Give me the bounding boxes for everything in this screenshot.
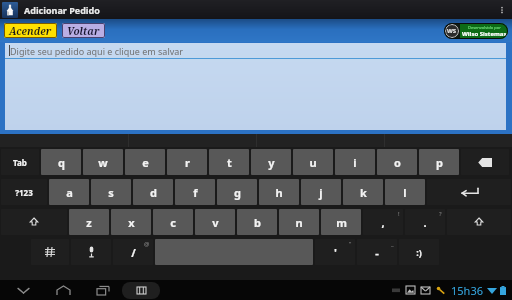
button[interactable]: App icon	[0, 0, 512, 19]
staticText: m	[336, 215, 347, 230]
button[interactable]: WS	[444, 23, 508, 39]
button[interactable]: t	[209, 149, 249, 175]
staticText: "	[349, 240, 352, 248]
staticText: Acender	[9, 24, 52, 38]
staticText: ,	[381, 215, 385, 230]
button[interactable]: k	[343, 179, 383, 205]
staticText: b	[254, 215, 261, 230]
button[interactable]: x	[111, 209, 151, 235]
staticText: j	[319, 185, 323, 200]
staticText: !	[398, 210, 400, 218]
staticText: l	[403, 185, 407, 200]
staticText: r	[185, 155, 190, 170]
button[interactable]: v	[195, 209, 235, 235]
button[interactable]: u	[293, 149, 333, 175]
button[interactable]: l	[385, 179, 425, 205]
staticText: Desenvolvido por	[468, 25, 501, 30]
button[interactable]: ?123	[1, 179, 47, 205]
button[interactable]: Switch keyboard	[122, 282, 160, 299]
button[interactable]: .	[405, 209, 445, 235]
button[interactable]: Voice input	[71, 239, 111, 265]
staticText: n	[295, 215, 303, 230]
staticText: p	[436, 155, 443, 170]
staticText: g	[234, 185, 241, 200]
staticText: a	[66, 185, 73, 200]
button[interactable]: Acender	[9, 23, 52, 38]
button[interactable]: h	[259, 179, 299, 205]
button[interactable]: s	[91, 179, 131, 205]
button[interactable]: Voltar	[67, 23, 100, 38]
staticText: Digite seu pedido aqui e clique em salva…	[10, 45, 184, 57]
button[interactable]: Tab	[1, 149, 39, 175]
staticText: q	[58, 155, 65, 170]
staticText: -	[375, 245, 379, 260]
button[interactable]: p	[419, 149, 459, 175]
button[interactable]: n	[279, 209, 319, 235]
button[interactable]: Shift	[1, 209, 67, 235]
button[interactable]: -	[357, 239, 397, 265]
button[interactable]: i	[335, 149, 375, 175]
button[interactable]: More options	[492, 0, 512, 19]
staticText: :)	[416, 246, 422, 258]
button[interactable]: d	[133, 179, 173, 205]
button[interactable]: z	[69, 209, 109, 235]
staticText: x	[128, 215, 135, 230]
button[interactable]: c	[153, 209, 193, 235]
staticText: Tab	[13, 157, 27, 168]
staticText: o	[394, 155, 401, 170]
button[interactable]: e	[125, 149, 165, 175]
button[interactable]: f	[175, 179, 215, 205]
staticText: f	[193, 185, 198, 200]
button[interactable]: Digite seu pedido aqui e clique em salva…	[5, 43, 506, 130]
staticText: y	[268, 155, 275, 170]
button[interactable]: ,	[363, 209, 403, 235]
button[interactable]: Keyboard settings	[31, 239, 69, 265]
button[interactable]: a	[49, 179, 89, 205]
staticText: '	[334, 245, 337, 260]
staticText: z	[86, 215, 92, 230]
staticText: Wilso Sistemas	[462, 30, 507, 38]
button[interactable]: Enter	[427, 179, 511, 205]
button[interactable]: :)	[399, 239, 439, 265]
staticText: /	[131, 245, 136, 260]
staticText: d	[150, 185, 157, 200]
button[interactable]: Home	[50, 280, 76, 300]
button[interactable]: y	[251, 149, 291, 175]
button[interactable]: /	[113, 239, 153, 265]
staticText: 15h36	[451, 283, 483, 298]
button[interactable]: Hide keyboard	[10, 280, 36, 300]
staticText: Adicionar Pedido	[24, 4, 100, 16]
button[interactable]: q	[41, 149, 81, 175]
button[interactable]: r	[167, 149, 207, 175]
staticText: Voltar	[67, 24, 100, 38]
button[interactable]: '	[315, 239, 355, 265]
button[interactable]: o	[377, 149, 417, 175]
staticText: _	[391, 240, 394, 248]
staticText: ?123	[15, 187, 33, 198]
staticText: u	[309, 155, 317, 170]
button[interactable]: m	[321, 209, 361, 235]
staticText: t	[227, 155, 232, 170]
button[interactable]: b	[237, 209, 277, 235]
staticText: @	[144, 240, 150, 248]
button[interactable]: Shift	[447, 209, 511, 235]
staticText: s	[108, 185, 114, 200]
staticText: h	[275, 185, 283, 200]
button[interactable]: Backspace	[461, 149, 509, 175]
staticText: w	[98, 155, 108, 170]
staticText: k	[360, 185, 367, 200]
button[interactable]: w	[83, 149, 123, 175]
staticText: ?	[439, 210, 442, 218]
button[interactable]: Recent apps	[90, 280, 116, 300]
button[interactable]: g	[217, 179, 257, 205]
button[interactable]: j	[301, 179, 341, 205]
staticText: WS	[447, 27, 457, 35]
staticText: c	[170, 215, 176, 230]
staticText: e	[142, 155, 149, 170]
staticText: .	[423, 215, 427, 230]
staticText: v	[212, 215, 219, 230]
staticText: i	[353, 155, 357, 170]
other: App icon	[2, 2, 18, 18]
